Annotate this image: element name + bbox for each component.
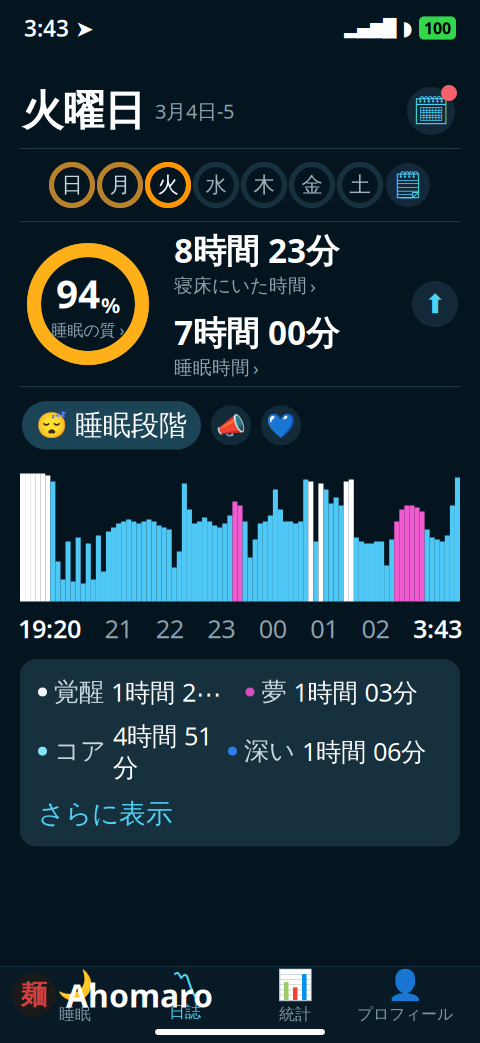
staticText: ◗ <box>402 17 413 39</box>
staticText: 火曜日 <box>22 86 145 136</box>
button[interactable]: さらに表示 <box>38 783 173 846</box>
staticText: 睡眠の質 › <box>51 319 124 340</box>
staticText: 1時間 2⋯ <box>111 675 221 709</box>
staticText: 3:43 ➤ <box>24 13 94 43</box>
staticText: 📊 <box>276 968 313 1001</box>
staticText: 〽 <box>170 970 199 999</box>
staticText: 火 <box>157 172 178 198</box>
staticText: 19:20 <box>18 611 81 645</box>
staticText: 睡眠段階 <box>75 408 187 442</box>
staticText: 🗒 <box>391 170 425 200</box>
staticText: 😴 <box>36 411 68 440</box>
staticText: 睡眠時間 <box>174 356 250 379</box>
staticText: 月 <box>109 172 130 198</box>
staticText: 4時間 51 分 <box>113 719 212 784</box>
staticText: 日誌 <box>169 1002 201 1022</box>
button[interactable]: 8時間 23分 <box>174 228 339 298</box>
staticText: 夢 <box>261 676 286 707</box>
button[interactable]: 共有 <box>410 279 460 329</box>
staticText: 💙 <box>266 412 296 439</box>
staticText: 日 <box>61 172 82 198</box>
staticText: 土 <box>349 172 370 198</box>
staticText: 麺 <box>20 979 47 1011</box>
staticText: 金 <box>301 172 322 198</box>
button[interactable]: 〽 <box>130 973 240 1019</box>
button[interactable]: 心拍数 <box>261 405 301 445</box>
staticText: 1時間 06分 <box>302 734 426 768</box>
button[interactable]: メモ <box>384 161 432 209</box>
staticText: 94 <box>56 268 100 319</box>
staticText: ▂▄▆█ <box>344 18 396 38</box>
staticText: 01 <box>310 611 338 645</box>
button[interactable]: 📊 <box>240 973 350 1019</box>
staticText: 寝床にいた時間 <box>174 274 307 297</box>
staticText: 8時間 23分 <box>174 228 339 272</box>
button[interactable]: 火 <box>144 161 192 209</box>
button[interactable]: 😴 <box>22 401 201 449</box>
staticText: ⬆ <box>424 289 446 319</box>
staticText: 02 <box>362 611 390 645</box>
staticText: 👤 <box>386 968 423 1001</box>
staticText: 水 <box>205 172 226 198</box>
staticText: 22 <box>156 611 184 645</box>
button[interactable]: 日 <box>48 161 96 209</box>
button[interactable]: カレンダー <box>404 84 458 138</box>
staticText: Ahomaro <box>66 974 213 1016</box>
staticText: 23 <box>207 611 235 645</box>
button[interactable]: 94 <box>20 236 156 372</box>
staticText: 100 <box>424 17 451 39</box>
button[interactable]: 木 <box>240 161 288 209</box>
staticText: 1時間 03分 <box>293 675 417 709</box>
staticText: 睡眠 <box>59 1004 91 1024</box>
staticText: 📣 <box>216 412 246 439</box>
staticText: 3月4日-5 <box>145 98 234 124</box>
staticText: 覚醒 <box>54 676 104 707</box>
staticText: 7時間 00分 <box>174 310 339 354</box>
button[interactable]: 👤 <box>350 973 460 1019</box>
staticText: 木 <box>253 172 274 198</box>
staticText: プロフィール <box>357 1004 453 1024</box>
staticText: 21 <box>104 611 132 645</box>
staticText: コア <box>54 736 106 767</box>
staticText: 3:43 <box>413 611 462 645</box>
staticText: 深い <box>244 736 295 767</box>
button[interactable]: 音声 <box>211 405 251 445</box>
button[interactable]: 金 <box>288 161 336 209</box>
staticText: 統計 <box>279 1004 311 1024</box>
staticText: › <box>310 273 316 298</box>
staticText: 🗓 <box>412 94 449 128</box>
staticText: 🌙 <box>56 968 93 1001</box>
staticText: % <box>101 291 120 319</box>
button[interactable]: 🌙 <box>20 973 130 1019</box>
staticText: › <box>253 355 259 380</box>
staticText: 00 <box>259 611 287 645</box>
button[interactable]: 土 <box>336 161 384 209</box>
button[interactable]: 月 <box>96 161 144 209</box>
button[interactable]: 水 <box>192 161 240 209</box>
staticText: さらに表示 <box>38 797 173 830</box>
button[interactable]: 7時間 00分 <box>174 310 339 380</box>
